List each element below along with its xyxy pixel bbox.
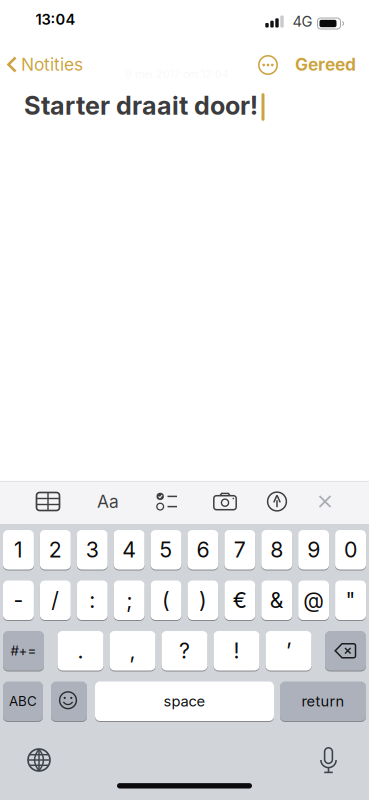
button[interactable]: :	[77, 580, 108, 620]
button[interactable]: #+=	[3, 630, 44, 671]
button[interactable]: (	[151, 580, 181, 620]
button[interactable]: .	[57, 630, 103, 671]
button[interactable]: ;	[114, 580, 145, 620]
button[interactable]: 7	[224, 529, 255, 570]
button[interactable]: !	[213, 630, 259, 671]
button[interactable]: Dismiss keyboard bar	[318, 495, 331, 508]
button[interactable]: return	[280, 681, 366, 721]
button[interactable]: "	[335, 580, 366, 620]
staticText: !	[233, 638, 239, 663]
button[interactable]: 2	[40, 529, 71, 570]
button[interactable]: Notities	[7, 49, 117, 79]
staticText: 8	[270, 537, 283, 562]
staticText: Aa	[97, 491, 119, 512]
staticText: 0	[344, 537, 357, 562]
button[interactable]: Gereed	[295, 54, 356, 75]
staticText: space	[163, 693, 205, 710]
staticText: 1	[14, 537, 23, 562]
staticText: Starter draait door!	[24, 91, 258, 120]
staticText: (	[162, 588, 170, 613]
staticText: "	[345, 588, 355, 613]
staticText: ,	[129, 638, 135, 663]
button[interactable]: 0	[335, 529, 366, 570]
staticText: 9	[307, 537, 320, 562]
staticText: 2	[49, 537, 62, 562]
button[interactable]: &	[261, 580, 292, 620]
staticText: return	[301, 693, 344, 710]
staticText: /	[51, 588, 59, 613]
button[interactable]: Insert table	[35, 491, 60, 511]
button[interactable]: Dictate	[320, 747, 337, 775]
staticText: ;	[126, 588, 132, 613]
button[interactable]: space	[95, 681, 274, 721]
staticText: :	[89, 588, 95, 613]
button[interactable]: -	[3, 580, 34, 620]
button[interactable]: @	[298, 580, 329, 620]
button[interactable]: )	[187, 580, 218, 620]
button[interactable]: 8	[261, 529, 292, 570]
staticText: )	[199, 588, 207, 613]
button[interactable]: 1	[3, 529, 34, 570]
staticText: ’	[286, 638, 291, 663]
staticText: @	[303, 588, 324, 613]
staticText: .	[77, 638, 83, 663]
staticText: ABC	[9, 693, 37, 709]
button[interactable]: ,	[109, 630, 155, 671]
staticText: ?	[179, 638, 190, 663]
staticText: 7	[234, 537, 246, 562]
button[interactable]: €	[224, 580, 255, 620]
staticText: 5	[159, 537, 172, 562]
staticText: 3	[86, 537, 99, 562]
staticText: &	[270, 588, 284, 613]
button[interactable]: /	[40, 580, 71, 620]
button[interactable]: Insert photo	[213, 492, 237, 510]
staticText: €	[233, 588, 247, 613]
button[interactable]: More	[257, 54, 278, 75]
button[interactable]: Checklist	[155, 492, 178, 511]
button[interactable]: 5	[151, 529, 181, 570]
button[interactable]: Text style	[97, 491, 119, 512]
staticText: Notities	[21, 54, 83, 75]
button[interactable]: Markup	[266, 491, 287, 512]
button[interactable]: ’	[265, 630, 311, 671]
button[interactable]: ABC	[3, 681, 43, 721]
staticText: Gereed	[295, 54, 356, 75]
staticText: 4	[122, 537, 136, 562]
staticText: 6	[196, 537, 209, 562]
staticText: 13:04	[35, 11, 75, 28]
staticText: #+=	[10, 643, 36, 659]
staticText: -	[13, 588, 23, 613]
button[interactable]: 4	[114, 529, 145, 570]
button[interactable]: Next keyboard	[26, 747, 51, 772]
button[interactable]: 6	[187, 529, 218, 570]
staticText: 4G	[292, 13, 312, 30]
button[interactable]: Delete	[325, 630, 366, 671]
button[interactable]: 3	[77, 529, 108, 570]
button[interactable]: Emoji	[51, 681, 87, 721]
button[interactable]: ?	[161, 630, 207, 671]
button[interactable]: 9	[298, 529, 329, 570]
